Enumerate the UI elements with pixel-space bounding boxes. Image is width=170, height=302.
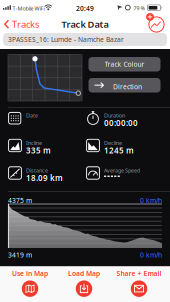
staticText: Average Speed bbox=[104, 167, 140, 174]
button[interactable]: Direction bbox=[88, 78, 160, 92]
staticText: Decline bbox=[104, 139, 122, 147]
staticText: Track Colour bbox=[104, 60, 144, 69]
staticText: 20:49 bbox=[76, 4, 94, 13]
button[interactable]: Use in Map bbox=[3, 270, 57, 296]
staticText: 1245 m bbox=[104, 145, 134, 156]
button[interactable]: Add Track bbox=[144, 12, 165, 32]
button[interactable]: Back to Tracks bbox=[4, 18, 39, 30]
staticText: Share + Email bbox=[116, 269, 161, 278]
staticText: Direction bbox=[113, 82, 142, 91]
button[interactable]: Share + Email bbox=[112, 270, 166, 296]
staticText: Incline bbox=[26, 139, 42, 147]
staticText: Tracks bbox=[12, 18, 39, 30]
staticText: 00:00:00 bbox=[104, 117, 138, 128]
staticText: 18.09 km bbox=[26, 172, 63, 183]
staticText: 4375 m bbox=[8, 196, 32, 205]
button[interactable]: Track Colour bbox=[88, 57, 160, 71]
staticText: 3PASSES_16: Lumde - Namche Bazar bbox=[8, 35, 124, 44]
staticText: T-Mobile WiFi bbox=[12, 5, 44, 12]
staticText: Track Data bbox=[61, 18, 108, 30]
staticText: 0 km/h bbox=[140, 196, 162, 205]
staticText: Distance bbox=[26, 167, 48, 174]
staticText: Date bbox=[26, 112, 38, 119]
staticText: 79 % bbox=[133, 5, 144, 12]
staticText: 335 m bbox=[26, 145, 51, 156]
staticText: Use in Map bbox=[12, 269, 48, 278]
staticText: Load Map bbox=[68, 269, 100, 278]
button[interactable]: Load Map bbox=[57, 270, 111, 296]
staticText: 3419 m bbox=[8, 250, 32, 259]
staticText: 0 km/h bbox=[140, 250, 162, 259]
staticText: Duration bbox=[104, 112, 125, 119]
